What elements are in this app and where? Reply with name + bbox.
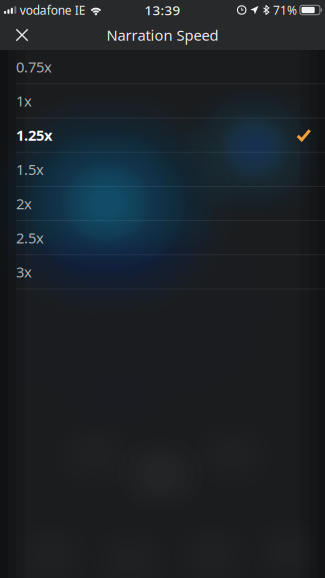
- button[interactable]: 1.5x: [0, 153, 325, 187]
- staticText: 2x: [16, 194, 32, 213]
- button[interactable]: Close: [0, 20, 44, 50]
- button[interactable]: 1x: [0, 84, 325, 118]
- staticText: 0.75x: [16, 57, 52, 76]
- staticText: 1x: [16, 91, 32, 111]
- staticText: 3x: [16, 262, 32, 282]
- staticText: Narration Speed: [106, 25, 218, 45]
- staticText: 2.5x: [16, 228, 44, 247]
- button[interactable]: 0.75x: [0, 50, 325, 84]
- button[interactable]: 2x: [0, 187, 325, 221]
- staticText: 1.5x: [16, 160, 44, 179]
- staticText: 1.25x: [16, 125, 52, 145]
- button[interactable]: 1.25x: [0, 118, 325, 153]
- button[interactable]: 2.5x: [0, 221, 325, 255]
- staticText: vodafone IE: [20, 2, 86, 18]
- staticText: 71%: [273, 2, 297, 18]
- staticText: 13:39: [144, 1, 180, 19]
- button[interactable]: 3x: [0, 255, 325, 289]
